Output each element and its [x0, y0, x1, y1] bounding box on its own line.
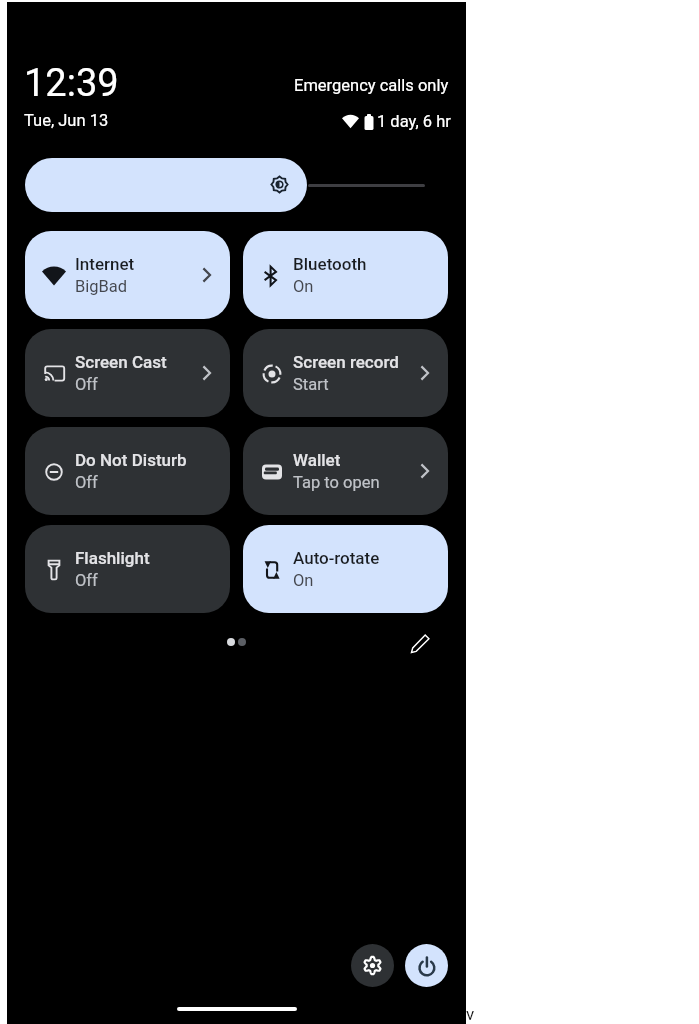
staticText: Screen record — [293, 352, 399, 372]
button[interactable]: Internet — [25, 231, 230, 319]
staticText: 12:39 — [24, 61, 119, 106]
button[interactable]: Edit — [399, 622, 441, 664]
button[interactable]: Auto-rotate — [243, 525, 448, 613]
button[interactable]: Settings — [351, 944, 394, 987]
button[interactable]: Flashlight — [25, 525, 230, 613]
button[interactable]: Brightness — [25, 158, 307, 212]
staticText: Off — [75, 571, 98, 590]
staticText: Off — [75, 375, 98, 394]
button[interactable]: Screen Cast — [25, 329, 230, 417]
staticText: BigBad — [75, 277, 128, 296]
staticText: On — [293, 571, 314, 590]
staticText: Screen Cast — [75, 352, 167, 372]
staticText: Off — [75, 473, 98, 492]
button[interactable]: Wallet — [243, 427, 448, 515]
button[interactable]: Do Not Disturb — [25, 427, 230, 515]
staticText: Bluetooth — [293, 254, 367, 274]
staticText: Tue, Jun 13 — [24, 111, 109, 130]
staticText: On — [293, 277, 314, 296]
staticText: Do Not Disturb — [75, 450, 187, 470]
button[interactable]: Power — [405, 944, 448, 987]
staticText: Wallet — [293, 450, 341, 470]
staticText: Flashlight — [75, 548, 150, 568]
staticText: Emergency calls only — [294, 76, 449, 95]
staticText: Auto-rotate — [293, 548, 380, 568]
staticText: Tap to open — [293, 473, 380, 492]
staticText: 1 day, 6 hr — [377, 112, 451, 131]
staticText: Start — [293, 375, 329, 394]
button[interactable]: Screen record — [243, 329, 448, 417]
staticText: v — [466, 1004, 475, 1024]
staticText: Internet — [75, 254, 135, 274]
button[interactable]: Bluetooth — [243, 231, 448, 319]
